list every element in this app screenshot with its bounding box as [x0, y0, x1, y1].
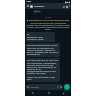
- button[interactable]: We shall get back to you over call tomor…: [26, 58, 60, 82]
- button[interactable]: Voice message: [64, 84, 70, 90]
- staticText: TODAY: [34, 10, 40, 13]
- staticText: 12:56: [26, 0, 32, 3]
- staticText: Hi, Greetings from COMPANY India: [27, 33, 54, 41]
- button[interactable]: Video call: [62, 5, 65, 8]
- button[interactable]: TODAY: [33, 10, 41, 13]
- staticText: ● ▲ ▮: [65, 1, 70, 3]
- staticText: We shall get back to you over call tomor…: [27, 59, 59, 81]
- button[interactable]: We tried reaching out to you over call t…: [26, 43, 60, 57]
- button[interactable]: Hi, Greetings from COMPANY India: [26, 32, 55, 42]
- button[interactable]: Call: [65, 5, 68, 8]
- button[interactable]: Back: [26, 4, 30, 8]
- button[interactable]: More options: [68, 5, 70, 7]
- staticText: We tried reaching out to you over call t…: [27, 44, 59, 56]
- staticText: TODAY: [45, 16, 52, 18]
- staticText: 🔒 Messages and calls are end-to-end encr…: [26, 19, 70, 30]
- staticText: Message: [30, 86, 39, 89]
- staticText: Company: [34, 5, 45, 8]
- button[interactable]: Message: [26, 84, 63, 90]
